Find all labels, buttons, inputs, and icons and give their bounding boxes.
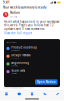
staticText: WEEKLY DIGEST [6, 41, 17, 43]
staticText: 4 comments [11, 57, 19, 59]
staticText: Product roadmap [11, 46, 37, 49]
staticText: Your weekly summary is ready [3, 6, 46, 9]
button[interactable]: Reply [38, 90, 51, 97]
staticText: View the full report [4, 31, 32, 35]
button[interactable]: Archive [0, 90, 13, 97]
button[interactable]: Open Notion [35, 79, 58, 85]
button[interactable]: Compose [51, 90, 64, 97]
staticText: Unsubscribe · View in browser [3, 87, 24, 89]
staticText: Notion [10, 11, 20, 14]
staticText: Engineering [11, 61, 29, 65]
button[interactable]: Design reviews [4, 52, 60, 60]
button[interactable]: Delete [26, 90, 38, 97]
staticText: 1 mention [11, 73, 17, 74]
staticText: Here's what happened in your workspace t… [4, 20, 60, 31]
staticText: to me [10, 15, 18, 18]
button[interactable]: Team wiki [4, 68, 60, 75]
staticText: Team wiki [11, 69, 25, 72]
button[interactable]: Engineering [4, 60, 60, 68]
staticText: 2 updates [11, 65, 18, 67]
staticText: 9:41 [3, 1, 10, 4]
staticText: N [5, 13, 7, 16]
button[interactable]: Move [13, 90, 26, 97]
staticText: Open Notion [37, 80, 56, 84]
staticText: Design reviews [11, 53, 30, 57]
staticText: 8 new blocks [11, 49, 20, 51]
button[interactable]: Product roadmap [4, 45, 60, 52]
